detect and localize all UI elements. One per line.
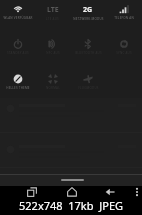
staticText: NFC AUS xyxy=(46,51,60,55)
button[interactable]: TELEFON AN xyxy=(106,1,142,36)
staticText: 522x748 17kb JPEG xyxy=(19,198,124,213)
button[interactable]: BLUETOOTH AUS xyxy=(70,36,106,71)
staticText: STANDBY AUS xyxy=(7,51,29,55)
staticText: LTE AUS xyxy=(46,17,59,21)
button[interactable]: WLAN VERFÜGBAR xyxy=(0,1,35,36)
staticText: WLAN VERFÜGBAR xyxy=(3,16,33,20)
staticText: LTE xyxy=(47,5,59,15)
button[interactable]: NORMAL xyxy=(35,71,70,98)
staticText: SYNC AUS xyxy=(116,51,132,55)
button[interactable]: NFC AUS xyxy=(35,36,70,71)
button[interactable]: Home xyxy=(64,184,80,200)
button[interactable]: More options xyxy=(129,184,142,200)
button[interactable]: HELLES THEME xyxy=(0,71,35,98)
button[interactable]: SYNC AUS xyxy=(106,36,142,71)
staticText: NETZWERK-MODUS xyxy=(73,17,104,21)
button[interactable]: NETZWERK-MODUS xyxy=(70,1,106,36)
button[interactable]: FLUGMODUS xyxy=(70,71,106,98)
staticText: TELEFON AN xyxy=(114,16,134,20)
staticText: NORMAL xyxy=(46,86,60,90)
staticText: 2G xyxy=(83,5,93,15)
button[interactable]: Recents xyxy=(24,184,40,200)
button[interactable]: STANDBY AUS xyxy=(0,36,35,71)
button[interactable]: LTE AUS xyxy=(35,1,70,36)
button[interactable]: Back xyxy=(102,184,118,200)
staticText: HELLES THEME xyxy=(6,86,30,90)
